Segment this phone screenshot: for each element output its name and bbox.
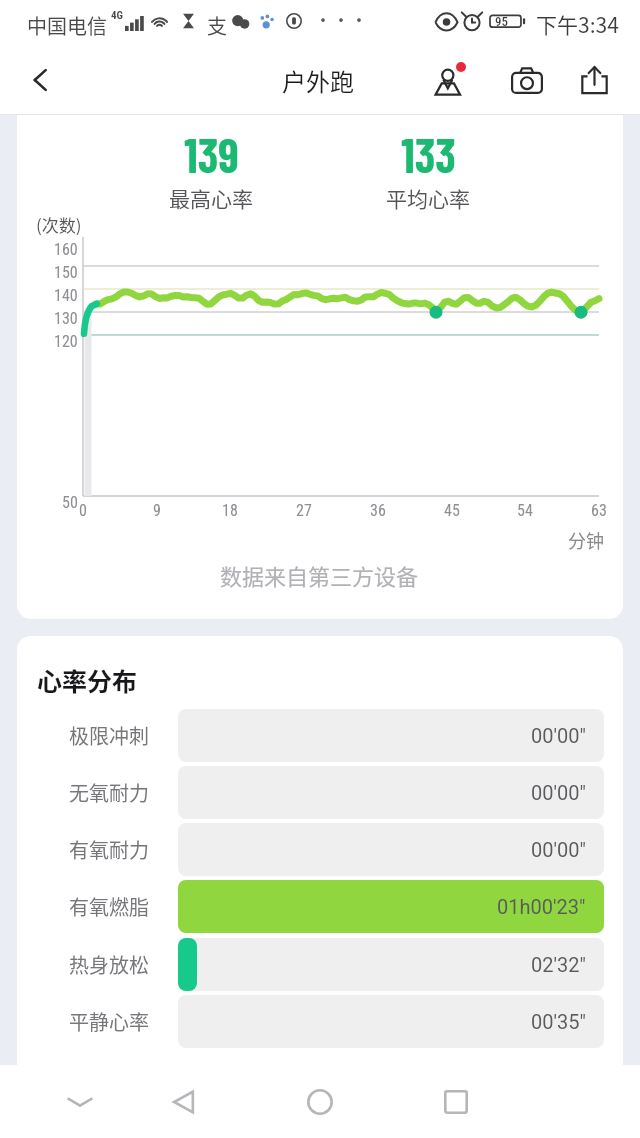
staticText: 中国电信 (27, 11, 107, 40)
staticText: 00'00" (531, 724, 586, 747)
button[interactable]: 极限冲刺 (17, 707, 623, 764)
staticText: 平静心率 (69, 1007, 149, 1036)
staticText: 45 (444, 501, 460, 520)
button[interactable]: Home (286, 1065, 354, 1138)
staticText: 36 (370, 501, 386, 520)
staticText: 133 (401, 126, 456, 182)
staticText: 18 (222, 501, 238, 520)
button[interactable]: 有氧燃脂 (17, 878, 623, 935)
staticText: 27 (296, 501, 312, 520)
staticText: 140 (54, 286, 78, 305)
staticText: ··· (314, 6, 368, 32)
staticText: 极限冲刺 (69, 721, 149, 750)
staticText: 户外跑 (282, 63, 354, 98)
staticText: 心率分布 (37, 662, 138, 698)
button[interactable]: Share (565, 49, 623, 111)
staticText: 139 (184, 126, 239, 182)
button[interactable]: Collapse (46, 1065, 114, 1138)
button[interactable]: Back (14, 53, 68, 107)
button[interactable]: 平静心率 (17, 993, 623, 1050)
button[interactable]: Camera (488, 49, 565, 111)
staticText: 63 (591, 501, 607, 520)
staticText: 00'00" (531, 781, 586, 804)
button[interactable]: 热身放松 (17, 936, 623, 993)
staticText: 分钟 (568, 527, 604, 553)
staticText: 最高心率 (169, 183, 253, 213)
button[interactable]: 有氧耐力 (17, 821, 623, 878)
staticText: 有氧耐力 (69, 835, 149, 864)
staticText: 50 (62, 493, 78, 512)
staticText: 120 (54, 332, 78, 351)
staticText: 有氧燃脂 (69, 892, 149, 921)
staticText: 00'35" (531, 1010, 586, 1033)
staticText: 160 (54, 240, 78, 259)
staticText: (次数) (36, 212, 82, 237)
staticText: 4G (111, 9, 123, 22)
staticText: 00'00" (531, 838, 586, 861)
staticText: 热身放松 (69, 950, 149, 979)
staticText: 支 (207, 11, 227, 40)
staticText: 无氧耐力 (69, 778, 149, 807)
staticText: 平均心率 (386, 183, 470, 213)
staticText: 02'32" (531, 953, 586, 976)
staticText: 54 (517, 501, 533, 520)
staticText: 数据来自第三方设备 (220, 559, 419, 591)
staticText: 130 (54, 309, 78, 328)
button[interactable]: Recent apps (422, 1065, 490, 1138)
staticText: 0 (79, 501, 87, 520)
staticText: 150 (54, 263, 78, 282)
button[interactable]: 无氧耐力 (17, 764, 623, 821)
staticText: 下午3:34 (536, 9, 619, 39)
staticText: 9 (153, 501, 161, 520)
staticText: 95 (495, 14, 508, 29)
button[interactable]: Back (150, 1065, 218, 1138)
button[interactable]: Map route (411, 49, 488, 111)
staticText: 01h00'23" (497, 895, 586, 918)
